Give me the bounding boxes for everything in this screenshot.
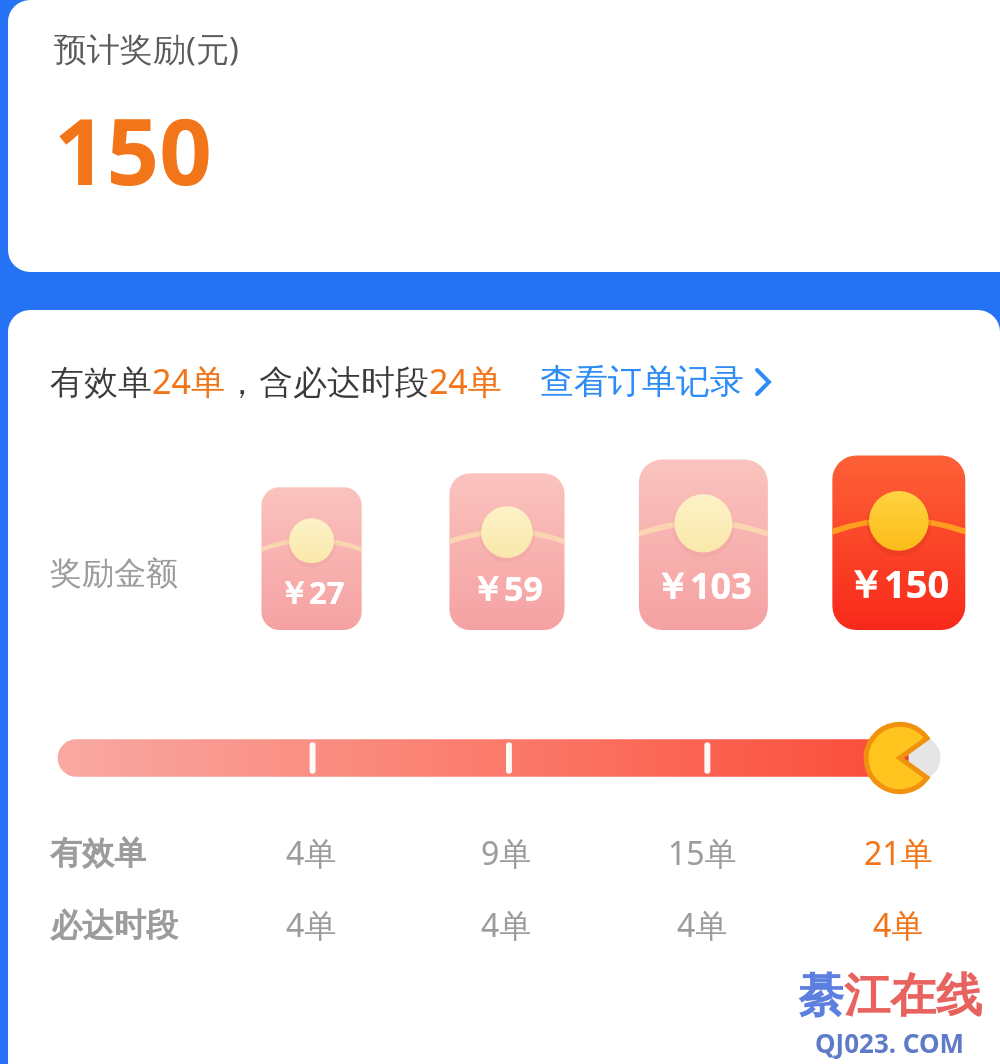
staticText: 查看订单记录	[540, 360, 744, 403]
staticText: 4单	[873, 903, 924, 947]
staticText: 必达时段	[50, 905, 178, 945]
staticText: 150	[54, 87, 212, 212]
staticText: 綦江在线	[798, 967, 982, 1025]
staticText: 有效单	[50, 833, 146, 873]
staticText: QJ023. COM	[815, 1025, 965, 1060]
staticText: ￥59	[470, 565, 543, 611]
staticText: 4单	[286, 831, 337, 875]
button[interactable]: ￥150	[846, 557, 950, 609]
staticText: ￥150	[846, 557, 950, 609]
staticText: 9单	[481, 831, 532, 875]
staticText: 4单	[677, 903, 728, 947]
button[interactable]: 预计奖励(元)	[8, 0, 1000, 272]
staticText: 4单	[481, 903, 532, 947]
staticText: 4单	[286, 903, 337, 947]
button[interactable]: 查看订单记录	[540, 360, 771, 403]
staticText: ￥103	[654, 561, 752, 610]
staticText: 15单	[668, 831, 737, 875]
button[interactable]: ￥27	[278, 571, 345, 613]
staticText: ￥27	[278, 571, 345, 613]
staticText: 预计奖励(元)	[54, 26, 239, 71]
staticText: 奖励金额	[50, 553, 178, 593]
staticText: 有效单24单，含必达时段24单	[50, 358, 502, 404]
button[interactable]: ￥103	[654, 561, 752, 610]
button[interactable]: ￥59	[470, 565, 543, 611]
other: 查看订单记录	[754, 367, 771, 397]
staticText: 21单	[864, 831, 933, 875]
